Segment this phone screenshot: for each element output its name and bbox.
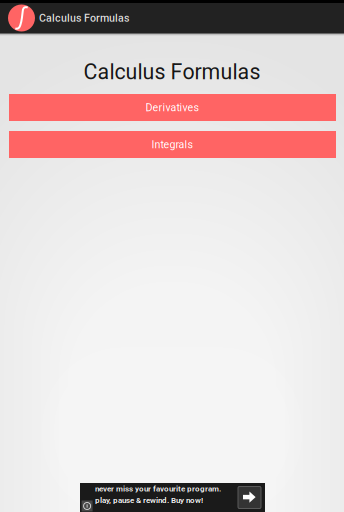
- button[interactable]: Advertisement: never miss your favourite…: [80, 483, 265, 512]
- staticText: Integrals: [151, 138, 193, 151]
- button[interactable]: Integrals: [9, 131, 336, 158]
- staticText: never miss your favourite program.: [95, 484, 221, 493]
- staticText: play, pause & rewind. Buy now!: [95, 495, 203, 505]
- staticText: Calculus Formulas: [83, 59, 260, 84]
- staticText: Calculus Formulas: [39, 12, 129, 24]
- staticText: Derivatives: [145, 101, 199, 114]
- button[interactable]: Derivatives: [9, 94, 336, 121]
